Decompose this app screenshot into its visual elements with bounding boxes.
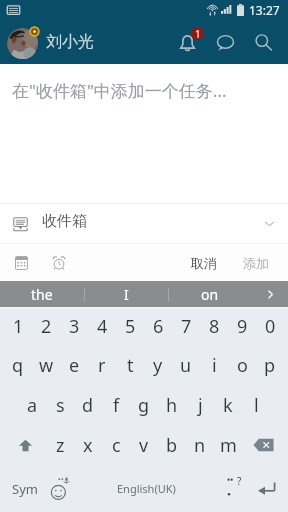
staticText: 7 xyxy=(181,314,192,339)
button[interactable]: 收件箱 xyxy=(0,204,288,243)
staticText: i xyxy=(212,353,217,378)
staticText: 2 xyxy=(41,314,52,339)
staticText: Sym xyxy=(12,480,38,498)
button[interactable]: n xyxy=(186,425,214,465)
staticText: m xyxy=(220,433,237,458)
button[interactable]: h xyxy=(158,385,186,425)
staticText: ? xyxy=(237,474,242,488)
button[interactable]: b xyxy=(158,425,186,465)
staticText: 9 xyxy=(237,314,248,339)
staticText: w xyxy=(39,353,54,378)
button[interactable]: Notifications xyxy=(168,23,206,61)
button[interactable]: Space xyxy=(76,465,216,512)
staticText: e xyxy=(69,353,80,378)
staticText: g xyxy=(138,393,150,418)
staticText: the xyxy=(31,285,53,304)
staticText: 在"收件箱"中添加一个任务... xyxy=(12,79,227,102)
staticText: x xyxy=(83,433,93,458)
staticText: 取消 xyxy=(191,255,217,271)
button[interactable]: 4 xyxy=(88,308,116,345)
button[interactable]: 2 xyxy=(32,308,60,345)
staticText: 收件箱 xyxy=(42,212,87,231)
button[interactable]: k xyxy=(214,385,242,425)
staticText: 13:27 xyxy=(249,2,280,18)
button[interactable]: s xyxy=(46,385,74,425)
button[interactable]: Backspace xyxy=(242,425,284,465)
staticText: 3 xyxy=(69,314,80,339)
staticText: a xyxy=(27,393,38,418)
button[interactable]: 9 xyxy=(228,308,256,345)
staticText: c xyxy=(112,433,121,458)
staticText: y xyxy=(153,353,163,378)
button[interactable]: ? xyxy=(216,465,250,512)
staticText: n xyxy=(194,433,206,458)
staticText: 8 xyxy=(209,314,220,339)
button[interactable]: on xyxy=(168,281,252,308)
button[interactable]: y xyxy=(144,345,172,385)
staticText: 1 xyxy=(195,27,201,40)
button[interactable]: a xyxy=(18,385,46,425)
staticText: k xyxy=(223,393,233,418)
staticText: j xyxy=(198,393,203,418)
button[interactable]: m xyxy=(214,425,242,465)
button[interactable]: c xyxy=(102,425,130,465)
button[interactable]: 8 xyxy=(200,308,228,345)
button[interactable]: q xyxy=(4,345,32,385)
button[interactable]: Due date xyxy=(6,248,36,278)
button[interactable]: j xyxy=(186,385,214,425)
staticText: z xyxy=(56,433,65,458)
staticText: h xyxy=(166,393,178,418)
staticText: on xyxy=(201,285,219,304)
button[interactable]: Reminder xyxy=(44,248,74,278)
button[interactable]: p xyxy=(256,345,284,385)
button[interactable]: 1 xyxy=(4,308,32,345)
button[interactable]: t xyxy=(116,345,144,385)
button[interactable]: Emoji xyxy=(45,465,76,512)
staticText: o xyxy=(237,353,248,378)
button[interactable]: Shift xyxy=(4,425,46,465)
staticText: 1 xyxy=(13,314,24,339)
button[interactable]: 6 xyxy=(144,308,172,345)
button[interactable]: x xyxy=(74,425,102,465)
button[interactable]: the xyxy=(0,281,84,308)
button[interactable]: l xyxy=(242,385,270,425)
button[interactable]: d xyxy=(74,385,102,425)
staticText: p xyxy=(264,353,276,378)
button[interactable]: 5 xyxy=(116,308,144,345)
button[interactable]: f xyxy=(102,385,130,425)
button[interactable]: g xyxy=(130,385,158,425)
button[interactable]: e xyxy=(60,345,88,385)
staticText: 6 xyxy=(153,314,164,339)
button[interactable]: w xyxy=(32,345,60,385)
button[interactable]: I xyxy=(84,281,168,308)
staticText: f xyxy=(113,393,120,418)
button[interactable]: Search xyxy=(244,23,282,61)
button[interactable]: v xyxy=(130,425,158,465)
button[interactable]: Messages xyxy=(206,23,244,61)
button[interactable]: z xyxy=(46,425,74,465)
button[interactable]: Profile xyxy=(7,26,40,59)
staticText: q xyxy=(12,353,24,378)
staticText: English(UK) xyxy=(117,481,176,496)
button[interactable]: i xyxy=(200,345,228,385)
button[interactable]: More suggestions xyxy=(252,281,288,308)
button[interactable]: 取消 xyxy=(182,248,226,278)
button[interactable]: r xyxy=(88,345,116,385)
staticText: 4 xyxy=(97,314,108,339)
button[interactable]: Enter xyxy=(250,465,284,512)
button[interactable]: o xyxy=(228,345,256,385)
staticText: I xyxy=(124,285,129,304)
button[interactable]: u xyxy=(172,345,200,385)
staticText: t xyxy=(127,353,134,378)
staticText: 刘小光 xyxy=(46,32,94,52)
button[interactable]: 添加 xyxy=(234,248,278,278)
button[interactable]: Sym xyxy=(4,465,45,512)
button[interactable]: 7 xyxy=(172,308,200,345)
button[interactable]: 0 xyxy=(256,308,284,345)
staticText: l xyxy=(254,393,259,418)
button[interactable]: 3 xyxy=(60,308,88,345)
staticText: 0 xyxy=(265,314,276,339)
staticText: u xyxy=(180,353,192,378)
staticText: r xyxy=(98,353,106,378)
staticText: b xyxy=(166,433,178,458)
